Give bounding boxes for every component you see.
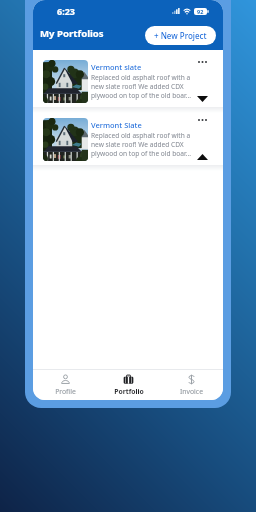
button[interactable]: Collapse [192,152,213,161]
button[interactable]: Expand [192,94,213,103]
staticText: 6:23 [57,5,75,17]
staticText: Vermont Slate [91,120,142,130]
staticText: + New Project [154,30,207,41]
staticText: Replaced old asphalt roof with a new sla… [91,73,191,100]
button[interactable]: Invoice [160,369,223,400]
staticText: Replaced old asphalt roof with a new sla… [91,131,191,158]
button[interactable]: Vermont slate [39,56,217,107]
staticText: 92 [197,8,204,15]
staticText: Vermont slate [91,62,142,72]
button[interactable]: More options [192,116,213,123]
staticText: My Portfolios [40,27,104,40]
button[interactable]: Vermont Slate [39,114,217,165]
button[interactable]: Profile [33,369,97,400]
button[interactable]: More options [192,58,213,65]
staticText: Invoice [180,387,203,396]
button[interactable]: Portfolio [97,369,160,400]
button[interactable]: + New Project [145,26,216,45]
staticText: Profile [55,387,76,396]
staticText: Portfolio [114,387,144,396]
